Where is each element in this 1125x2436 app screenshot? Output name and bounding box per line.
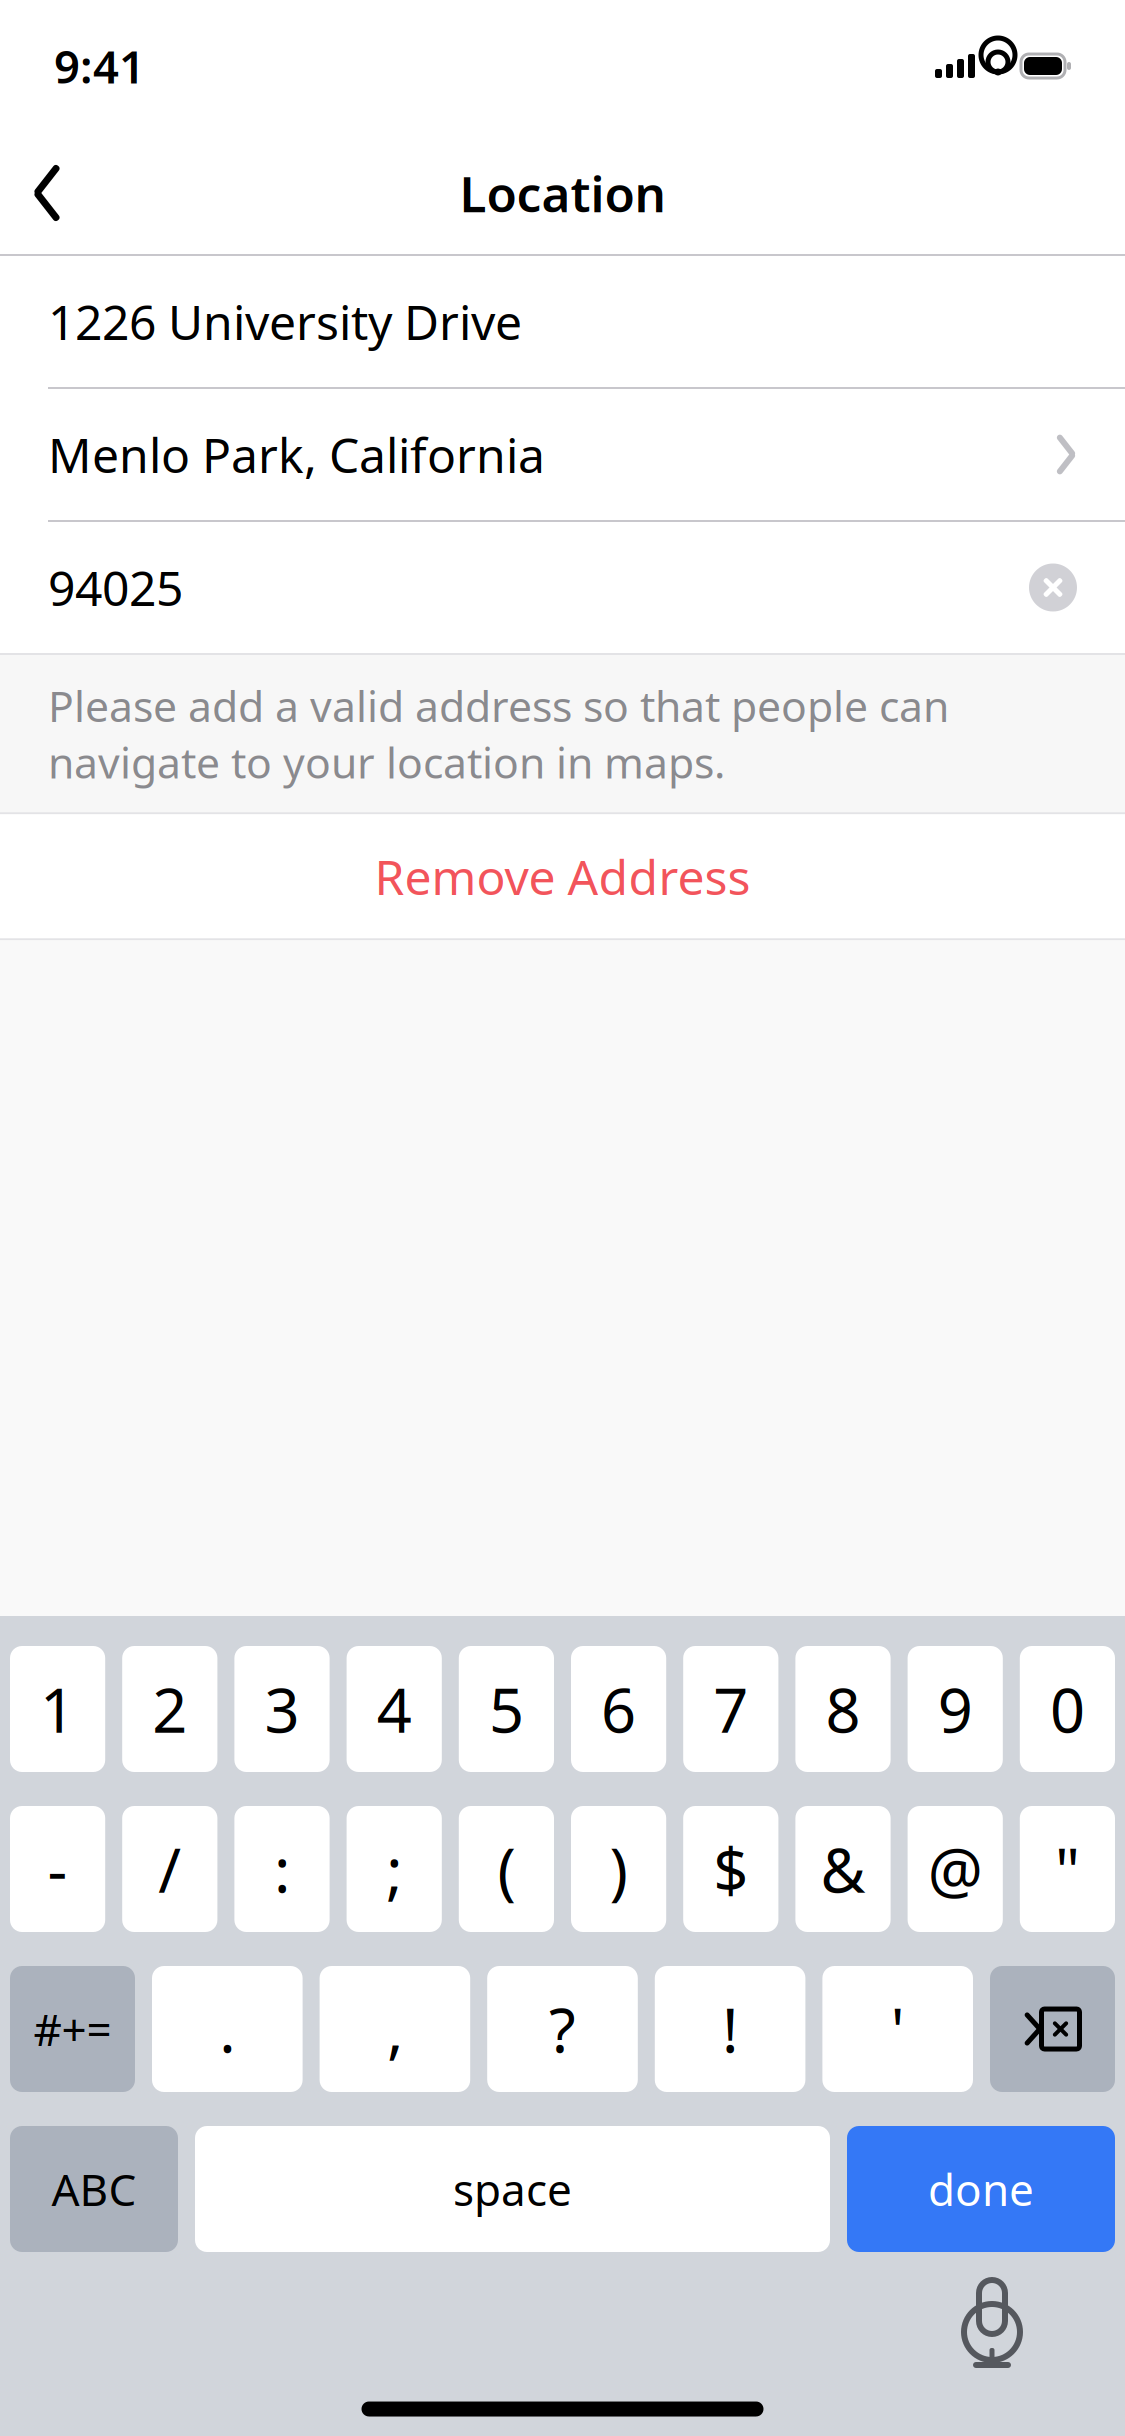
staticText: ? bbox=[549, 1988, 576, 2070]
button[interactable]: Dictate bbox=[927, 2257, 1057, 2377]
staticText: . bbox=[219, 1988, 235, 2070]
button[interactable]: 6 bbox=[571, 1646, 666, 1772]
staticText: 5 bbox=[489, 1668, 524, 1750]
button[interactable]: 8 bbox=[795, 1646, 891, 1772]
staticText: Menlo Park, California bbox=[48, 423, 545, 486]
staticText: 6 bbox=[601, 1668, 636, 1750]
staticText: 94025 bbox=[48, 556, 183, 619]
button[interactable]: ; bbox=[347, 1806, 442, 1932]
button[interactable]: $ bbox=[683, 1806, 778, 1932]
staticText: 7 bbox=[713, 1668, 748, 1750]
button[interactable]: 5 bbox=[459, 1646, 554, 1772]
staticText: " bbox=[1055, 1828, 1080, 1910]
staticText: $ bbox=[713, 1828, 748, 1910]
button[interactable]: ? bbox=[487, 1966, 638, 2092]
staticText: 1226 University Drive bbox=[48, 290, 522, 353]
button[interactable]: 4 bbox=[347, 1646, 442, 1772]
staticText: 0 bbox=[1050, 1668, 1085, 1750]
button[interactable]: #+= bbox=[10, 1966, 135, 2092]
button[interactable]: 2 bbox=[122, 1646, 217, 1772]
button[interactable]: , bbox=[320, 1966, 470, 2092]
button[interactable]: 1226 University Drive bbox=[0, 256, 1125, 389]
button[interactable]: 3 bbox=[234, 1646, 330, 1772]
button[interactable]: Delete bbox=[990, 1966, 1115, 2092]
staticText: 1 bbox=[40, 1668, 75, 1750]
staticText: ! bbox=[722, 1988, 738, 2070]
staticText: 2 bbox=[152, 1668, 187, 1750]
staticText: ) bbox=[610, 1828, 628, 1910]
staticText: Please add a valid address so that peopl… bbox=[48, 677, 949, 790]
button[interactable]: ( bbox=[459, 1806, 554, 1932]
button[interactable]: ! bbox=[655, 1966, 805, 2092]
button[interactable]: 9 bbox=[908, 1646, 1003, 1772]
staticText: ( bbox=[497, 1828, 515, 1910]
staticText: @ bbox=[928, 1828, 983, 1910]
staticText: 9 bbox=[938, 1668, 973, 1750]
button[interactable]: Menlo Park, California bbox=[0, 389, 1125, 522]
button[interactable]: ) bbox=[571, 1806, 666, 1932]
button[interactable]: Back bbox=[0, 145, 94, 241]
staticText: #+= bbox=[33, 2000, 111, 2058]
button[interactable]: 0 bbox=[1020, 1646, 1115, 1772]
staticText: done bbox=[928, 2160, 1034, 2218]
button[interactable]: space bbox=[195, 2126, 830, 2252]
button[interactable]: " bbox=[1020, 1806, 1115, 1932]
staticText: , bbox=[387, 1988, 403, 2070]
button[interactable]: ' bbox=[822, 1966, 973, 2092]
staticText: 4 bbox=[377, 1668, 412, 1750]
button[interactable]: - bbox=[10, 1806, 105, 1932]
staticText: ; bbox=[386, 1828, 402, 1910]
staticText: 9:41 bbox=[54, 36, 145, 96]
button[interactable]: . bbox=[152, 1966, 303, 2092]
button[interactable]: @ bbox=[908, 1806, 1003, 1932]
button[interactable]: & bbox=[795, 1806, 891, 1932]
staticText: & bbox=[820, 1828, 865, 1910]
staticText: 3 bbox=[264, 1668, 299, 1750]
button[interactable]: Remove Address bbox=[0, 814, 1125, 938]
staticText: 8 bbox=[825, 1668, 860, 1750]
staticText: Remove Address bbox=[374, 844, 750, 908]
button[interactable]: / bbox=[122, 1806, 217, 1932]
staticText: / bbox=[158, 1828, 181, 1910]
staticText: ABC bbox=[51, 2160, 136, 2218]
button[interactable]: 94025 bbox=[0, 522, 1125, 653]
staticText: - bbox=[48, 1828, 68, 1910]
button[interactable]: : bbox=[234, 1806, 330, 1932]
staticText: Location bbox=[459, 160, 665, 226]
button[interactable]: ABC bbox=[10, 2126, 178, 2252]
staticText: : bbox=[274, 1828, 290, 1910]
staticText: space bbox=[453, 2160, 572, 2218]
button[interactable]: 1 bbox=[10, 1646, 105, 1772]
button[interactable]: 7 bbox=[683, 1646, 778, 1772]
staticText: ' bbox=[891, 1988, 905, 2070]
button[interactable]: done bbox=[847, 2126, 1115, 2252]
